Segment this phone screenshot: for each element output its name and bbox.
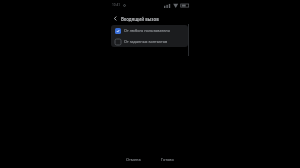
button[interactable]: От любого пользователя bbox=[111, 25, 188, 36]
button[interactable]: От заданных контактов bbox=[111, 36, 188, 47]
staticText: Отмена bbox=[126, 157, 141, 162]
staticText: Входящий вызов bbox=[121, 16, 159, 22]
button[interactable]: Готово bbox=[157, 155, 178, 164]
button[interactable]: Назад bbox=[111, 14, 120, 23]
button[interactable]: Отмена bbox=[122, 155, 145, 164]
staticText: От заданных контактов bbox=[124, 39, 168, 44]
staticText: От любого пользователя bbox=[124, 28, 170, 33]
staticText: 10:41 bbox=[112, 3, 121, 7]
staticText: Готово bbox=[161, 157, 174, 162]
